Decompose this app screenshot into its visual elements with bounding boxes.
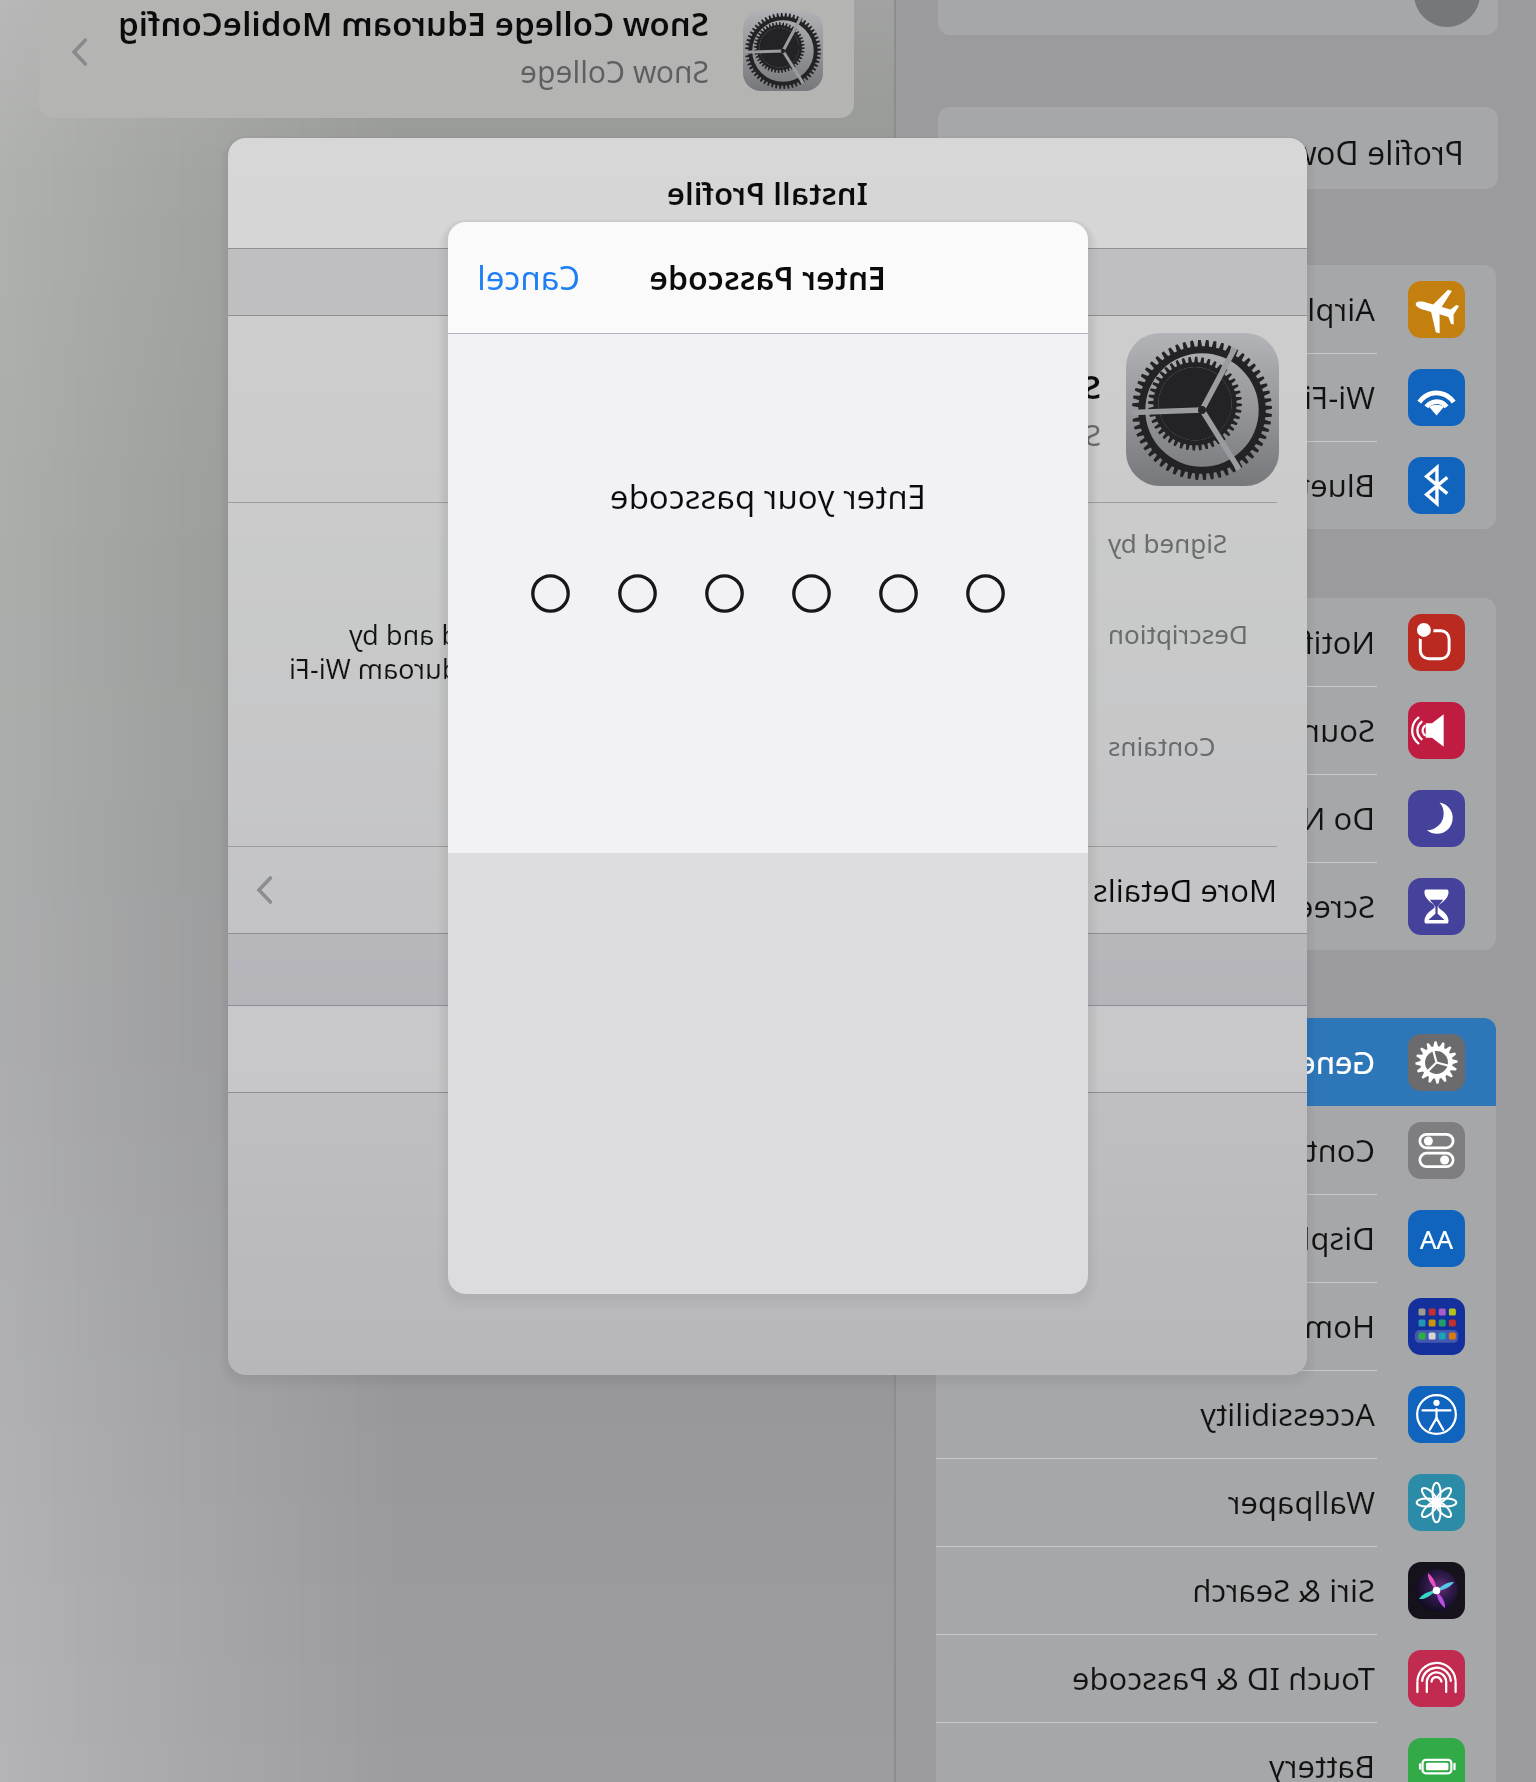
button[interactable]: Siri & Search bbox=[936, 1546, 1496, 1634]
staticText: Display & Brightness bbox=[1073, 1217, 1375, 1259]
staticText: Eduroam Wi-Fi bbox=[289, 650, 474, 687]
staticText: Wi-Fi bbox=[1304, 376, 1375, 418]
staticText: Snow College bbox=[918, 415, 1101, 454]
staticText: Battery bbox=[1268, 1745, 1375, 1782]
staticText: Sounds bbox=[1266, 709, 1375, 751]
staticText: Do Not Disturb bbox=[1156, 797, 1375, 839]
button[interactable]: Notifications bbox=[936, 598, 1496, 686]
staticText: Notifications bbox=[1190, 621, 1375, 663]
button[interactable]: Cancel bbox=[448, 222, 602, 333]
staticText: Siri & Search bbox=[1192, 1569, 1375, 1611]
staticText: Snow College bbox=[520, 51, 709, 92]
staticText: Screen Time bbox=[1197, 885, 1375, 927]
button[interactable]: Accessibility bbox=[936, 1370, 1496, 1458]
staticText: Contains bbox=[1108, 728, 1216, 763]
staticText: General bbox=[1260, 1041, 1375, 1083]
staticText: Install Profile bbox=[666, 172, 868, 214]
staticText: Enter Passcode bbox=[649, 256, 886, 300]
staticText: Airplane Mode bbox=[1161, 288, 1375, 330]
button[interactable]: Wallpaper bbox=[936, 1458, 1496, 1546]
button[interactable]: Profile Downloaded bbox=[938, 107, 1498, 189]
button[interactable]: More Details bbox=[228, 847, 1307, 933]
staticText: Description bbox=[1108, 616, 1248, 651]
staticText: Accessibility bbox=[1200, 1393, 1375, 1435]
button[interactable]: Home Screen & Dock bbox=[936, 1282, 1496, 1370]
staticText: Snow College Eduroam MobileConfig bbox=[118, 1, 709, 46]
staticText: Control Center bbox=[1161, 1129, 1375, 1171]
button[interactable]: Control Center bbox=[936, 1106, 1496, 1194]
button[interactable]: Screen Time bbox=[936, 862, 1496, 950]
button[interactable]: AA bbox=[936, 1194, 1496, 1282]
staticText: Signed by bbox=[1108, 525, 1228, 560]
button[interactable]: Sounds bbox=[936, 686, 1496, 774]
button[interactable]: Bluetooth bbox=[936, 441, 1496, 529]
staticText: Enter your passcode bbox=[609, 474, 926, 519]
button[interactable]: Touch ID & Passcode bbox=[936, 1634, 1496, 1722]
button[interactable]: Airplane Mode bbox=[936, 265, 1496, 353]
button[interactable]: Wi-Fi bbox=[936, 353, 1496, 441]
staticText: Home Screen & Dock bbox=[1068, 1305, 1375, 1347]
button[interactable]: Do Not Disturb bbox=[936, 774, 1496, 862]
staticText: Snow College Eduroam MobileConfig bbox=[510, 364, 1101, 409]
button[interactable]: Back bbox=[52, 24, 108, 80]
staticText: This profile is provided and by bbox=[349, 616, 728, 653]
button[interactable]: Battery bbox=[936, 1722, 1496, 1782]
staticText: Bluetooth bbox=[1231, 464, 1375, 506]
staticText: More Details bbox=[1092, 869, 1277, 911]
staticText: Wallpaper bbox=[1227, 1481, 1375, 1523]
staticText: Touch ID & Passcode bbox=[1071, 1657, 1375, 1699]
staticText: AA bbox=[1419, 1221, 1453, 1256]
button[interactable] bbox=[938, 0, 1498, 35]
staticText: Profile Downloaded bbox=[1168, 131, 1464, 175]
button[interactable]: General bbox=[936, 1018, 1496, 1106]
staticText: Cancel bbox=[477, 255, 580, 300]
